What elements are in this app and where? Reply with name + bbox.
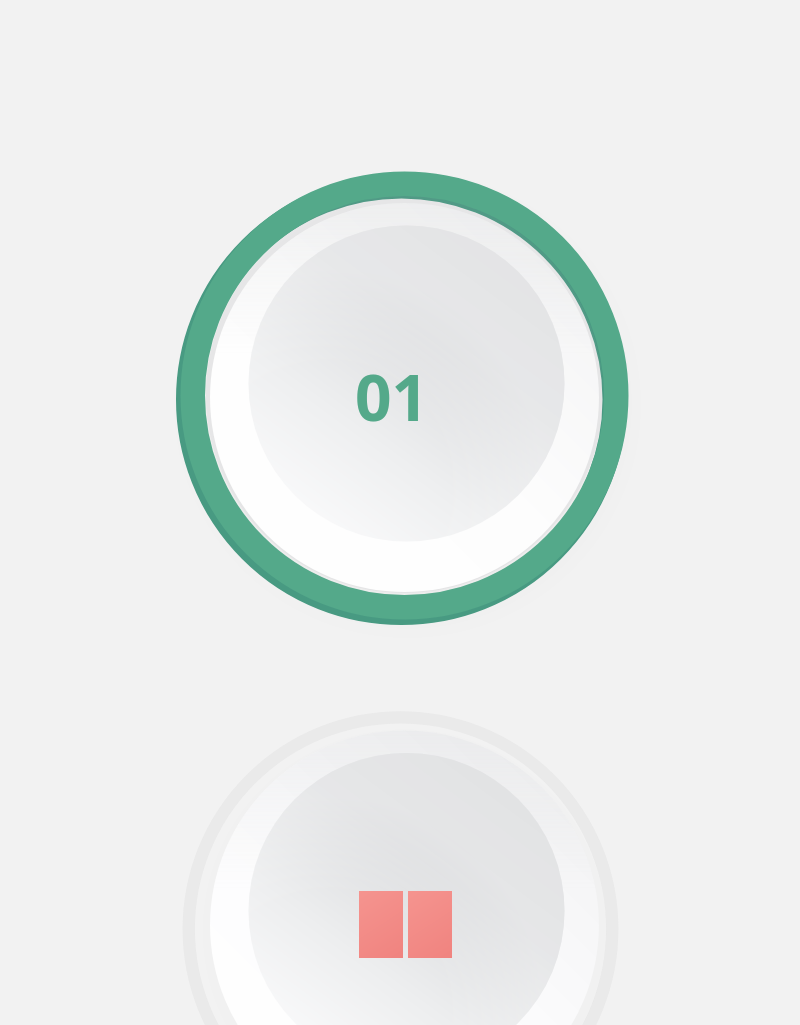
- button[interactable]: 01: [170, 160, 640, 635]
- button[interactable]: Pause: [170, 700, 640, 1025]
- staticText: 01: [355, 353, 429, 440]
